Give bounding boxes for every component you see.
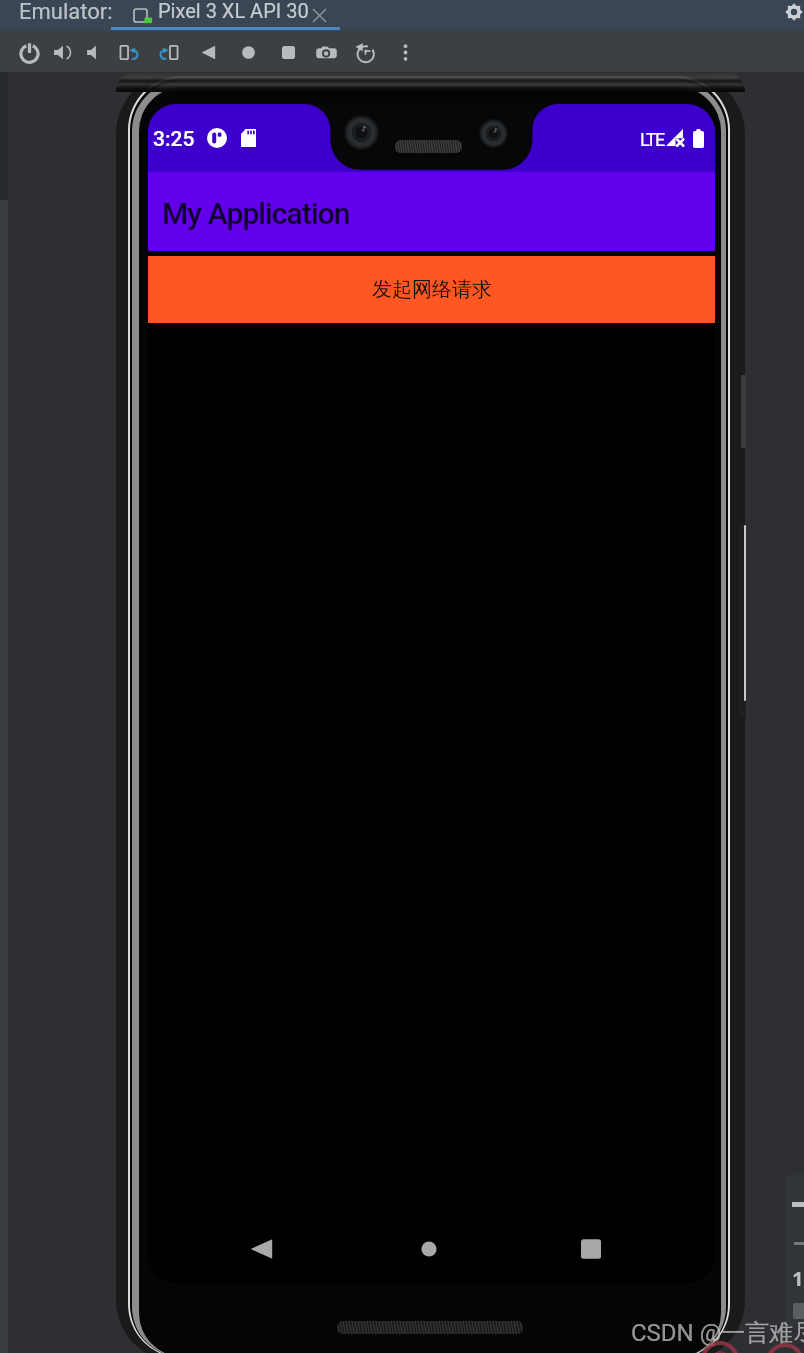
- button[interactable]: Rotate left: [118, 34, 140, 70]
- button[interactable]: Screenshot: [315, 34, 337, 70]
- button[interactable]: Power: [18, 34, 40, 70]
- staticText: 3:25: [153, 127, 195, 152]
- button[interactable]: Overview: [277, 34, 299, 70]
- staticText: My Application: [162, 196, 350, 231]
- button[interactable]: Back: [238, 1229, 278, 1269]
- button[interactable]: Pixel 3 XL API 30: [111, 0, 340, 30]
- button[interactable]: History: [354, 34, 376, 70]
- button[interactable]: Volume up: [51, 34, 73, 70]
- staticText: CSDN @一言难尽、: [631, 1318, 804, 1348]
- staticText: LTE: [640, 129, 664, 150]
- staticText: Emulator:: [19, 0, 113, 25]
- button[interactable]: Rotate right: [157, 34, 179, 70]
- staticText: 1: [792, 1265, 804, 1292]
- button[interactable]: Overview: [571, 1229, 611, 1269]
- button[interactable]: Home: [237, 34, 259, 70]
- button[interactable]: Volume down: [84, 34, 106, 70]
- staticText: 发起网络请求: [372, 277, 492, 302]
- staticText: Pixel 3 XL API 30: [158, 0, 309, 22]
- button[interactable]: Home: [409, 1229, 449, 1269]
- button[interactable]: Settings: [783, 1, 804, 23]
- button[interactable]: 发起网络请求: [148, 256, 715, 323]
- button[interactable]: Back: [197, 34, 219, 70]
- button[interactable]: More: [394, 34, 416, 70]
